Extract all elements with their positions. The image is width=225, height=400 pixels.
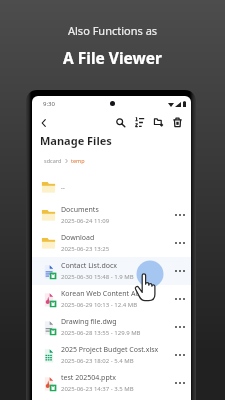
staticText: Manage Files xyxy=(40,133,112,148)
staticText: test 202504.pptx xyxy=(61,373,116,383)
button[interactable]: Contact List.docx xyxy=(32,257,191,285)
button[interactable]: Back xyxy=(35,114,52,131)
button[interactable]: Drawing file.dwg xyxy=(32,313,191,341)
staticText: Contact List.docx xyxy=(61,261,117,271)
staticText: Korean Web Content Acce... xyxy=(61,289,152,299)
button[interactable]: New folder xyxy=(150,114,167,131)
button[interactable]: More options xyxy=(173,292,187,306)
staticText: 2025-06-30 15:48 - 1.9 MB xyxy=(61,273,134,281)
staticText: 2025-06-24 11:09 xyxy=(61,217,110,225)
staticText: 2025-06-23 14:37 - 3.5 MB xyxy=(61,385,134,393)
button[interactable]: More options xyxy=(173,320,187,334)
staticText: .. xyxy=(61,182,65,192)
staticText: 2025-06-23 13:25 xyxy=(61,245,110,253)
staticText: Documents xyxy=(61,205,99,215)
button[interactable]: More options xyxy=(173,236,187,250)
button[interactable]: More options xyxy=(173,348,187,362)
button[interactable]: Delete xyxy=(169,114,186,131)
staticText: 9:30 xyxy=(43,100,55,108)
staticText: Drawing file.dwg xyxy=(61,317,117,327)
staticText: sdcard xyxy=(44,157,62,164)
button[interactable]: Download xyxy=(32,229,191,257)
button[interactable]: More options xyxy=(173,376,187,390)
staticText: Also Functions as xyxy=(68,23,158,38)
button[interactable]: 2025 Project Budget Cost.xlsx xyxy=(32,341,191,369)
staticText: 2025-06-28 13:55 - 129.9 MB xyxy=(61,329,141,337)
staticText: temp xyxy=(71,157,85,164)
button[interactable]: Search xyxy=(112,114,129,131)
staticText: A File Viewer xyxy=(63,47,162,68)
button[interactable]: test 202504.pptx xyxy=(32,369,191,397)
button[interactable]: Sort xyxy=(131,114,148,131)
button[interactable]: .. xyxy=(32,173,191,201)
staticText: 2025-06-23 18:02 - 5.4 MB xyxy=(61,357,134,365)
staticText: Download xyxy=(61,233,95,243)
button[interactable]: Documents xyxy=(32,201,191,229)
button[interactable]: Korean Web Content Acce... xyxy=(32,285,191,313)
button[interactable]: More options xyxy=(173,264,187,278)
staticText: 2025 Project Budget Cost.xlsx xyxy=(61,345,159,355)
button[interactable]: More options xyxy=(173,208,187,222)
staticText: 2025-06-29 10:13 - 12.4 MB xyxy=(61,301,138,309)
